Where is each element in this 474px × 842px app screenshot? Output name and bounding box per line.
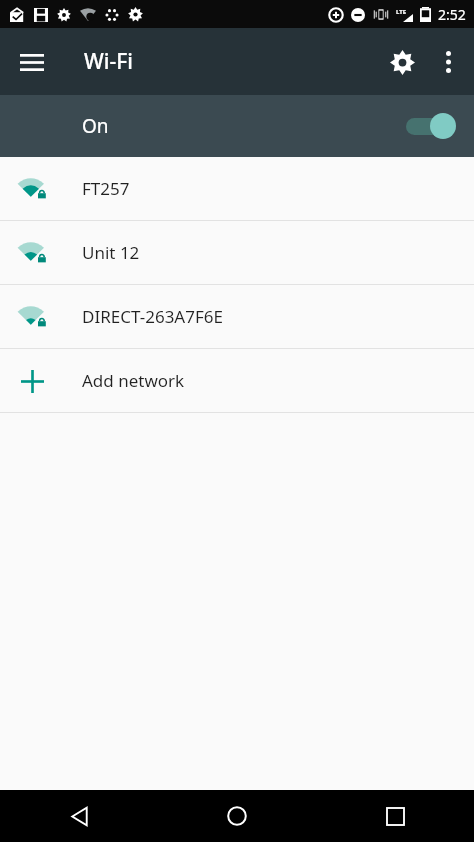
staticText: Add network [82,369,185,392]
staticText: DIRECT-263A7F6E [82,305,223,328]
button[interactable]: On [0,95,474,157]
staticText: LTE [396,8,407,16]
button[interactable]: Settings [378,38,426,86]
button[interactable]: Home [158,790,316,842]
staticText: 2:52 [438,5,466,24]
staticText: On [82,113,109,139]
button[interactable]: Back [0,790,158,842]
staticText: Wi-Fi [84,47,133,76]
button[interactable]: DIRECT-263A7F6E [0,285,474,348]
button[interactable]: FT257 [0,157,474,220]
button[interactable]: Add network [0,349,474,412]
button[interactable]: More options [426,40,470,84]
staticText: Unit 12 [82,241,140,264]
staticText: FT257 [82,177,130,200]
button[interactable]: Unit 12 [0,221,474,284]
button[interactable]: Navigation menu [8,38,56,86]
button[interactable]: Recent apps [316,790,474,842]
